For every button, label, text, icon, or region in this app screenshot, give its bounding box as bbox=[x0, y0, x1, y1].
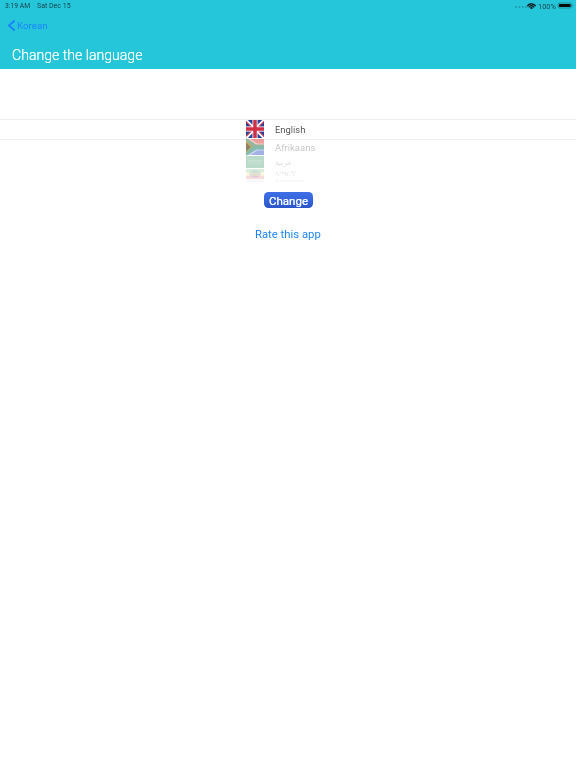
button[interactable]: Afrikaans bbox=[246, 139, 356, 155]
staticText: Change bbox=[269, 194, 308, 207]
staticText: Afrikaans bbox=[275, 142, 316, 153]
button[interactable]: Rate this app bbox=[250, 224, 326, 244]
other: Wi-Fi bbox=[528, 3, 535, 9]
staticText: Sat Dec 15 bbox=[37, 2, 71, 10]
button[interactable]: ኣማርኛ bbox=[246, 169, 356, 179]
staticText: Azərbaycan bbox=[275, 178, 305, 182]
button[interactable]: عربية bbox=[246, 156, 356, 168]
staticText: English bbox=[275, 124, 306, 135]
other: Battery 100 percent bbox=[558, 3, 573, 8]
button[interactable]: English bbox=[246, 120, 356, 138]
button[interactable]: Azərbaycan bbox=[246, 178, 356, 182]
staticText: Change the language bbox=[12, 47, 143, 64]
button[interactable]: Korean bbox=[6, 16, 50, 34]
staticText: Korean bbox=[17, 20, 48, 31]
staticText: Rate this app bbox=[255, 228, 321, 241]
staticText: عربية bbox=[275, 158, 293, 167]
button[interactable]: Change bbox=[264, 192, 313, 208]
staticText: 3:19 AM bbox=[5, 2, 31, 10]
staticText: ኣማርኛ bbox=[275, 170, 296, 178]
staticText: 100% bbox=[538, 2, 556, 11]
